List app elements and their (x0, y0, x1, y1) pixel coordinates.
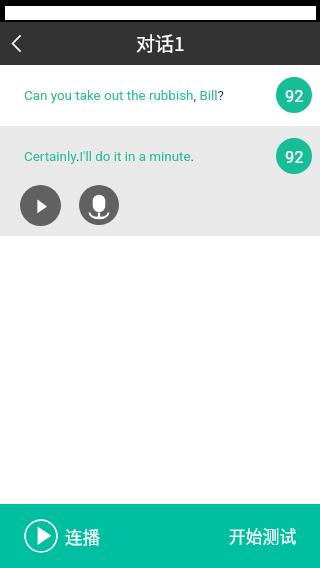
staticText: 92 (285, 87, 304, 106)
button[interactable]: 92 (276, 77, 312, 113)
staticText: 92 (285, 148, 304, 167)
button[interactable]: 连播 (24, 504, 100, 568)
button[interactable]: Can you take out the rubbish, Bill? (0, 65, 320, 126)
button[interactable]: Certainly.I'll do it in a minute. (0, 126, 320, 236)
staticText: Certainly.I'll do it in a minute. (24, 149, 274, 165)
button[interactable]: Record (79, 185, 119, 225)
staticText: Can you take out the rubbish, Bill? (24, 88, 274, 104)
staticText: 对话1 (136, 29, 185, 57)
button[interactable]: Play audio (20, 185, 61, 226)
button[interactable]: 92 (276, 138, 312, 174)
button[interactable]: 开始测试 (229, 504, 297, 568)
button[interactable]: Back (0, 22, 36, 65)
staticText: 开始测试 (229, 524, 297, 548)
staticText: 连播 (65, 524, 100, 549)
